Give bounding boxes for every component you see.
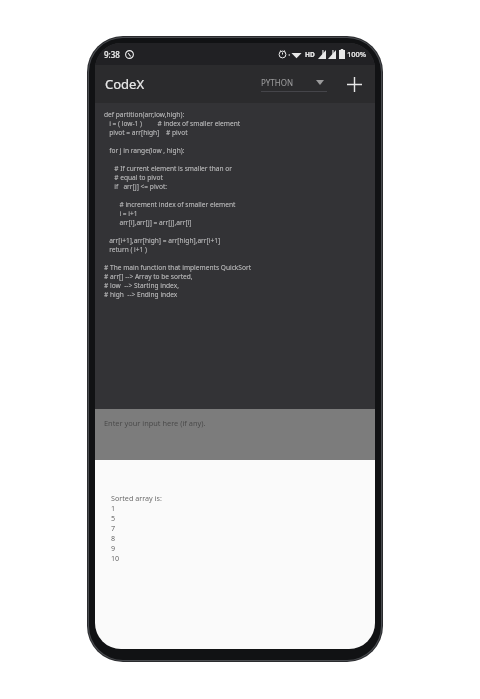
staticText: 1 xyxy=(111,503,116,513)
staticText: i = i+1 xyxy=(104,209,138,218)
staticText: # increment index of smaller element xyxy=(104,200,236,209)
staticText: PYTHON xyxy=(261,77,294,88)
staticText: if arr[j] <= pivot: xyxy=(104,182,168,191)
staticText: # low --> Starting index, xyxy=(104,281,179,290)
staticText: arr[i],arr[j] = arr[j],arr[i] xyxy=(104,218,192,227)
staticText: def partition(arr,low,high): xyxy=(104,110,185,119)
staticText: arr[i+1],arr[high] = arr[high],arr[i+1] xyxy=(104,236,221,245)
staticText: 10 xyxy=(111,553,120,563)
staticText: CodeX xyxy=(105,75,145,93)
staticText: 9 xyxy=(111,543,116,553)
staticText: # The main function that implements Quic… xyxy=(104,263,252,272)
staticText: pivot = arr[high] # pivot xyxy=(104,128,188,137)
staticText: Enter your input here (if any). xyxy=(104,418,206,428)
staticText: 9:38 xyxy=(104,49,120,60)
button[interactable]: def partition(arr,low,high): xyxy=(95,103,375,409)
staticText: for j in range(low , high): xyxy=(104,146,185,155)
staticText: 8 xyxy=(111,533,116,543)
button[interactable]: Add xyxy=(341,71,367,97)
staticText: # high --> Ending index xyxy=(104,290,178,299)
staticText: Sorted array is: xyxy=(111,493,162,503)
staticText: 7 xyxy=(111,523,116,533)
staticText: # If current element is smaller than or xyxy=(104,164,232,173)
staticText: # arr[] --> Array to be sorted, xyxy=(104,272,193,281)
button[interactable]: Enter your input here (if any). xyxy=(95,409,375,460)
button[interactable]: PYTHON xyxy=(259,73,329,96)
staticText: # equal to pivot xyxy=(104,173,163,182)
staticText: HD xyxy=(305,50,315,59)
staticText: return ( i+1 ) xyxy=(104,245,148,254)
staticText: 5 xyxy=(111,513,116,523)
staticText: 100% xyxy=(347,49,367,59)
staticText: i = ( low-1 ) # index of smaller element xyxy=(104,119,241,128)
